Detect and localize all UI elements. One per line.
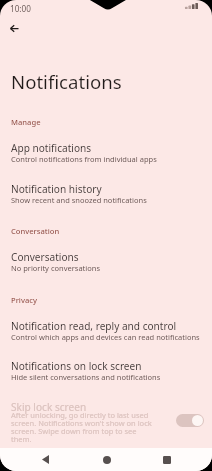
button[interactable]: Skip lock screen (0, 395, 212, 440)
staticText: Notification history (11, 182, 102, 196)
staticText: 10:00 (10, 3, 31, 14)
button[interactable]: Notification read, reply and control (0, 314, 212, 345)
button[interactable]: Navigate up (4, 17, 25, 38)
staticText: Conversations (11, 250, 79, 264)
button[interactable]: Skip lock screen toggle (176, 414, 204, 427)
button[interactable]: Back (34, 448, 57, 471)
staticText: Control notifications from individual ap… (11, 154, 157, 164)
button[interactable]: Notifications on lock screen (0, 354, 212, 385)
staticText: Notifications (11, 69, 122, 94)
staticText: Notification read, reply and control (11, 319, 177, 333)
staticText: App notifications (11, 141, 92, 155)
staticText: Show recent and snoozed notifications (11, 195, 147, 205)
button[interactable]: Notification history (0, 177, 212, 208)
button[interactable]: Recent apps (155, 448, 178, 471)
staticText: Control which apps and devices can read … (11, 332, 200, 342)
button[interactable]: Home (95, 448, 118, 471)
staticText: Conversation (11, 226, 60, 236)
button[interactable]: App notifications (0, 136, 212, 167)
staticText: Hide silent conversations and notificati… (11, 372, 161, 382)
staticText: Skip lock screen (11, 400, 87, 414)
staticText: After unlocking, go directly to last use… (11, 410, 157, 444)
staticText: Privacy (11, 295, 37, 305)
staticText: Notifications on lock screen (11, 359, 142, 373)
staticText: No priority conversations (11, 263, 101, 273)
staticText: Manage (11, 117, 41, 127)
button[interactable]: Conversations (0, 245, 212, 276)
